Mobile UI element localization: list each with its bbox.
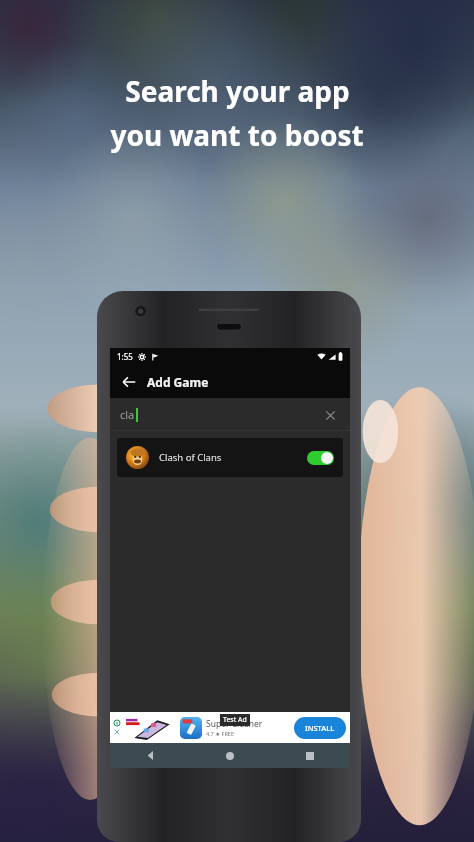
- button[interactable]: Recents: [270, 743, 350, 768]
- button[interactable]: Clash of Clans: [117, 438, 343, 477]
- button[interactable]: Boost toggle, on: [307, 451, 334, 465]
- staticText: Search your app: [125, 72, 350, 110]
- staticText: Super Cleaner: [206, 718, 263, 730]
- staticText: Test Ad: [223, 715, 247, 725]
- button[interactable]: Home: [190, 743, 270, 768]
- staticText: Clash of Clans: [159, 451, 222, 464]
- button[interactable]: INSTALL: [294, 717, 346, 739]
- button[interactable]: Back: [110, 743, 190, 768]
- staticText: you want to boost: [110, 116, 364, 154]
- button[interactable]: cla: [110, 398, 350, 431]
- staticText: cla: [120, 407, 135, 422]
- button[interactable]: Clear search: [320, 405, 340, 425]
- staticText: Add Game: [147, 374, 209, 390]
- staticText: 1:55: [117, 351, 133, 362]
- button[interactable]: Back: [118, 371, 140, 393]
- button[interactable]: Advertisement: Super Cleaner, Install: [110, 712, 350, 743]
- staticText: INSTALL: [305, 723, 335, 733]
- staticText: 4.7 ★ FREE: [206, 730, 234, 737]
